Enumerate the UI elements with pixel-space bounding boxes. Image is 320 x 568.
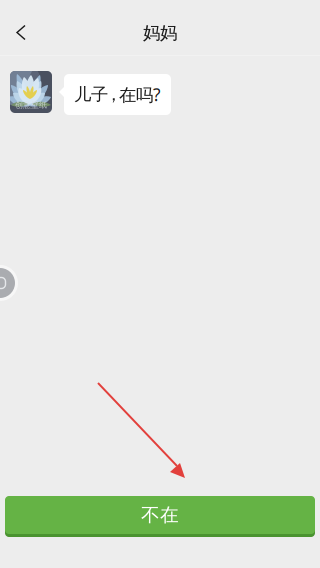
staticText: 创意壁纸	[15, 100, 47, 110]
button[interactable]: 不在	[5, 496, 315, 534]
staticText: 妈妈	[143, 22, 177, 44]
staticText: 儿子	[74, 84, 108, 105]
staticText: 在吗?	[119, 83, 161, 106]
staticText: ，	[105, 84, 122, 105]
button[interactable]: Back	[0, 11, 44, 55]
staticText: 不在	[141, 503, 179, 526]
